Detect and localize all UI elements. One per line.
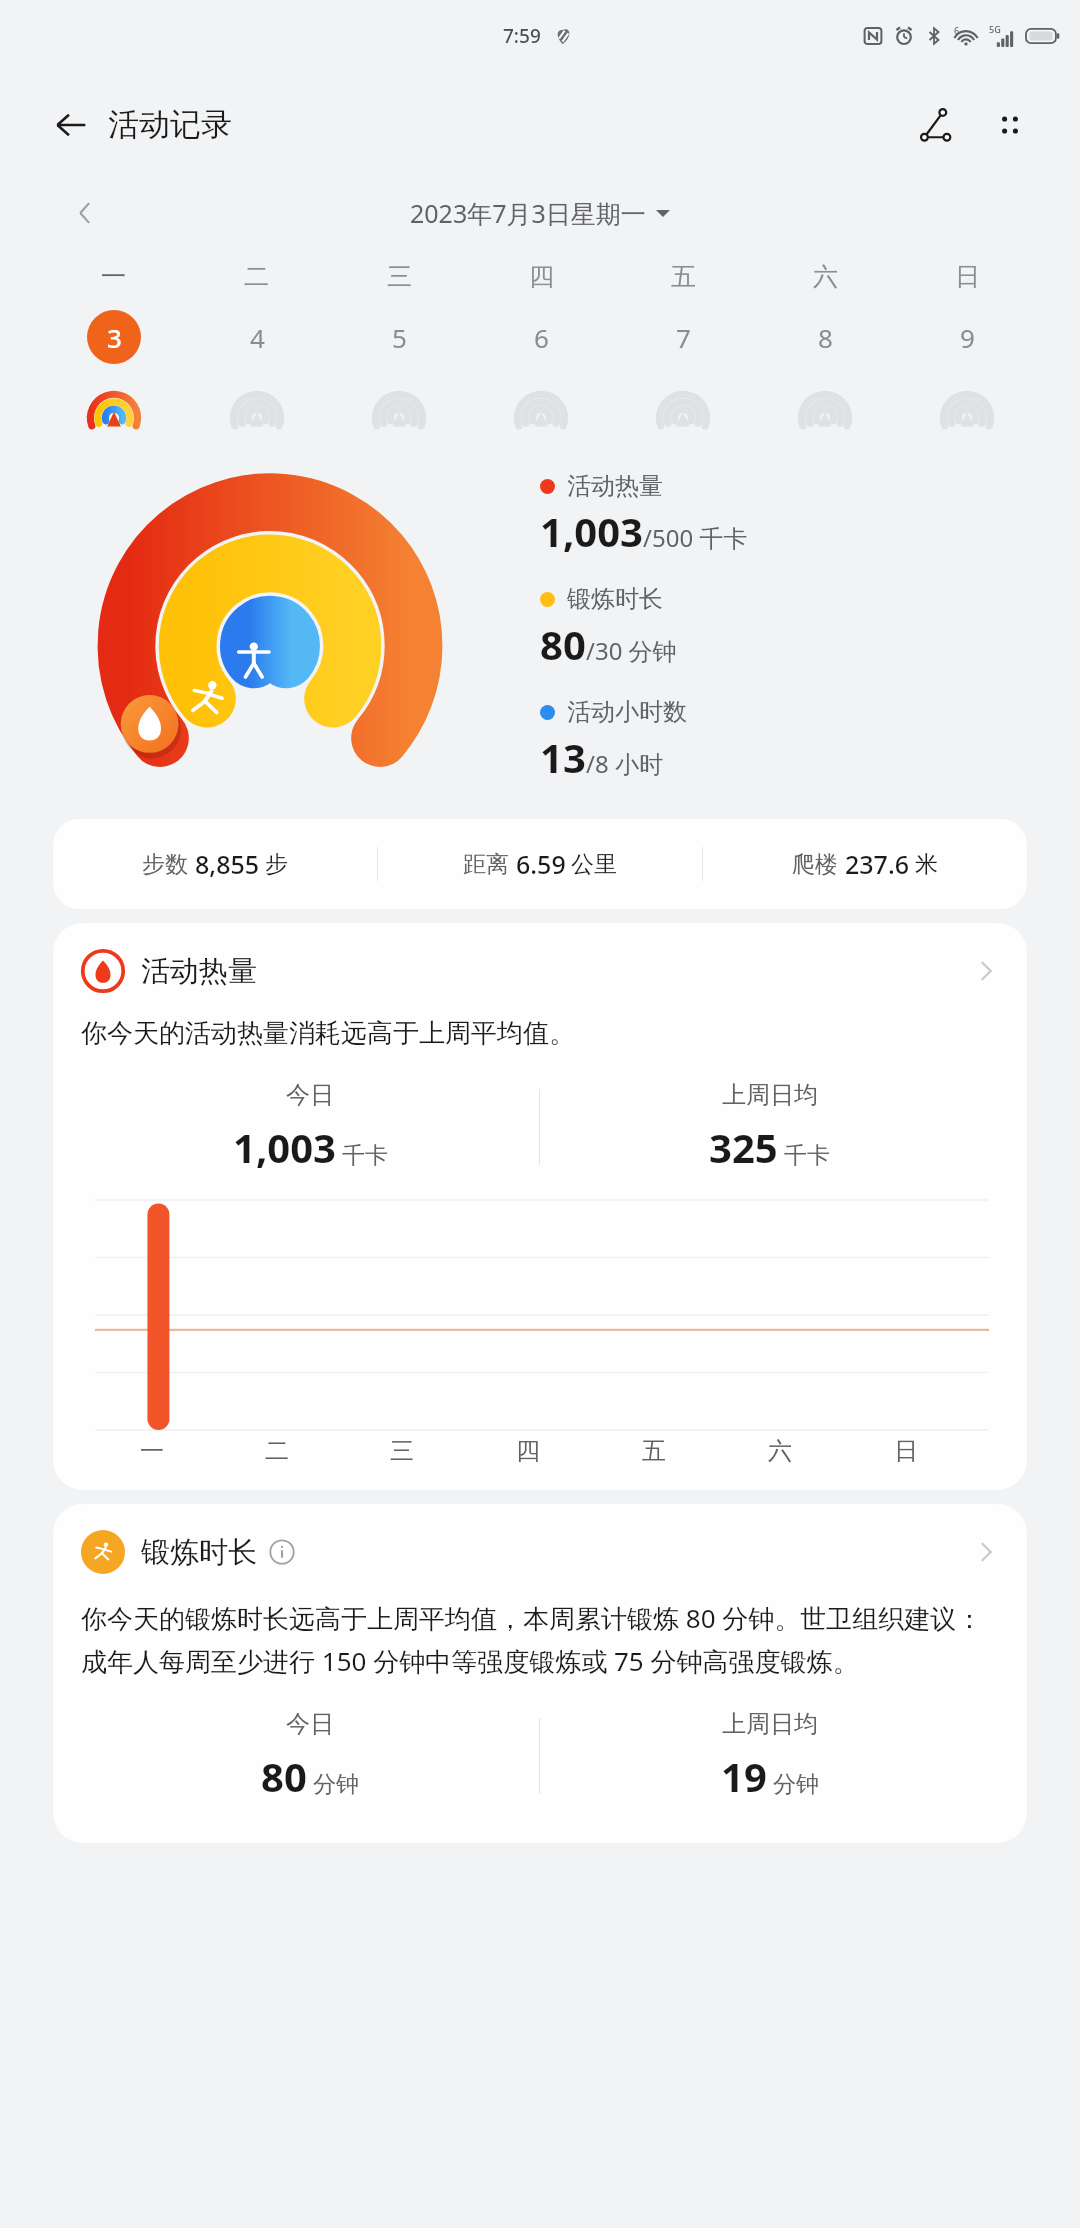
staticText: 三 <box>387 261 412 292</box>
staticText: 2023年7月3日星期一 <box>410 196 646 230</box>
staticText: 325 <box>709 1120 778 1174</box>
staticText: 80 <box>540 617 586 671</box>
staticText: /30 分钟 <box>586 634 677 667</box>
staticText: 6 <box>534 320 549 355</box>
staticText: 千卡 <box>342 1141 388 1170</box>
staticText: 活动热量 <box>567 471 663 501</box>
staticText: 五 <box>671 261 696 292</box>
staticText: 锻炼时长 <box>567 584 663 614</box>
staticText: 7 <box>676 320 691 355</box>
staticText: 你今天的锻炼时长远高于上周平均值，本周累计锻炼 80 分钟。世卫组织建议：成年人… <box>81 1600 999 1679</box>
staticText: 6.59 <box>516 847 566 881</box>
staticText: 8 <box>818 320 833 355</box>
staticText: 日 <box>894 1436 918 1466</box>
staticText: 19 <box>721 1749 767 1803</box>
button[interactable]: 活动热量 <box>53 923 1027 1490</box>
button[interactable]: 二 <box>185 249 328 439</box>
button[interactable]: 步数 <box>53 819 1027 909</box>
staticText: 爬楼 <box>792 850 838 879</box>
staticText: 千卡 <box>784 1141 830 1170</box>
button[interactable]: 五 <box>612 249 754 439</box>
button[interactable]: 四 <box>470 249 612 439</box>
staticText: 13 <box>540 730 586 784</box>
staticText: 二 <box>244 261 269 292</box>
staticText: 锻炼时长 <box>141 1534 257 1571</box>
staticText: 1,003 <box>233 1120 336 1174</box>
staticText: 四 <box>516 1436 540 1466</box>
button[interactable]: 锻炼时长 <box>540 584 677 671</box>
button[interactable]: 一 <box>42 249 185 439</box>
staticText: 四 <box>529 261 554 292</box>
staticText: 活动小时数 <box>567 697 687 727</box>
button[interactable]: 活动小时数 <box>540 697 687 784</box>
button[interactable]: 2023年7月3日星期一 <box>402 192 678 234</box>
staticText: 二 <box>265 1436 289 1466</box>
staticText: 3 <box>107 320 122 355</box>
staticText: 5 <box>392 320 407 355</box>
staticText: 1,003 <box>540 504 643 558</box>
button[interactable]: Back <box>44 98 98 152</box>
button[interactable]: Previous week <box>60 187 112 239</box>
staticText: 距离 <box>463 850 509 879</box>
staticText: 六 <box>813 261 838 292</box>
button[interactable]: 锻炼时长 <box>53 1504 1027 1843</box>
staticText: 一 <box>101 261 126 292</box>
button[interactable]: 三 <box>328 249 470 439</box>
button[interactable]: 活动热量 <box>540 471 748 558</box>
staticText: 分钟 <box>773 1770 819 1799</box>
button[interactable]: 六 <box>754 249 896 439</box>
staticText: 6 <box>954 24 960 36</box>
staticText: 一 <box>140 1436 164 1466</box>
staticText: 步数 <box>142 850 188 879</box>
staticText: 步 <box>265 850 288 879</box>
staticText: 六 <box>768 1436 792 1466</box>
staticText: 分钟 <box>313 1770 359 1799</box>
staticText: /8 小时 <box>586 747 663 780</box>
staticText: 今日 <box>286 1709 334 1739</box>
staticText: 7:59 <box>503 23 541 49</box>
staticText: 80 <box>261 1749 307 1803</box>
staticText: 上周日均 <box>722 1709 818 1739</box>
staticText: 5G <box>989 23 1001 35</box>
staticText: 上周日均 <box>722 1080 818 1110</box>
staticText: 公里 <box>571 850 617 879</box>
staticText: 活动记录 <box>108 105 232 144</box>
button[interactable]: 日 <box>896 249 1038 439</box>
staticText: 9 <box>960 320 975 355</box>
staticText: 日 <box>955 261 980 292</box>
staticText: 活动热量 <box>141 953 257 990</box>
staticText: 米 <box>915 850 938 879</box>
staticText: 8,855 <box>195 847 260 881</box>
staticText: 今日 <box>286 1080 334 1110</box>
staticText: 237.6 <box>845 847 910 881</box>
staticText: 你今天的活动热量消耗远高于上周平均值。 <box>81 1017 575 1050</box>
staticText: 三 <box>390 1436 414 1466</box>
button[interactable]: Share <box>906 95 966 155</box>
button[interactable]: More options <box>980 95 1040 155</box>
staticText: /500 千卡 <box>643 521 748 554</box>
staticText: 五 <box>642 1436 666 1466</box>
staticText: 4 <box>250 320 265 355</box>
